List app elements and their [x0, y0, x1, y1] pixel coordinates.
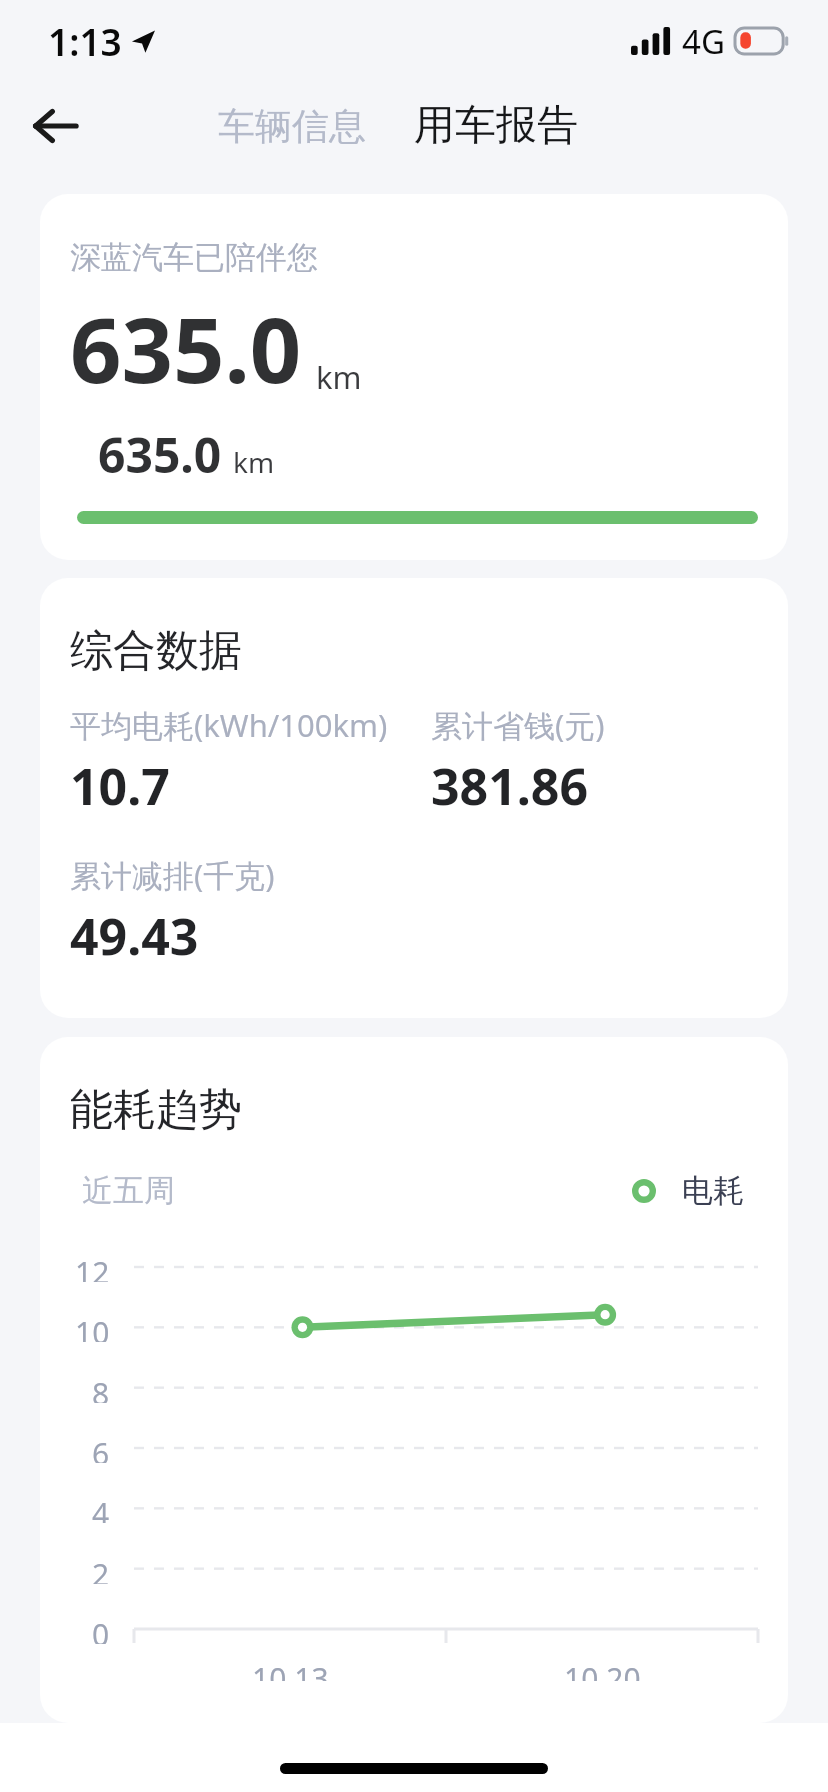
staticText: 能耗趋势 [70, 1083, 242, 1137]
staticText: 635.0 [98, 422, 222, 487]
staticText: 10.7 [70, 752, 170, 820]
staticText: 10 [75, 1312, 110, 1342]
button[interactable]: 综合数据 [40, 578, 788, 1018]
staticText: 49.43 [70, 902, 199, 970]
staticText: 10.13 [252, 1658, 329, 1681]
staticText: 635.0 [70, 287, 302, 410]
staticText: 累计省钱(元) [431, 704, 605, 746]
staticText: 8 [92, 1373, 110, 1403]
staticText: km [316, 356, 362, 398]
staticText: 近五周 [82, 1171, 175, 1210]
staticText: 6 [92, 1433, 110, 1463]
staticText: 累计减排(千克) [70, 854, 275, 896]
staticText: 0 [92, 1614, 110, 1644]
button[interactable]: Back [18, 89, 92, 163]
button[interactable]: 能耗趋势 [40, 1037, 788, 1723]
staticText: 平均电耗(kWh/100km) [70, 704, 388, 746]
button[interactable]: 电耗 [632, 1171, 744, 1210]
staticText: 车辆信息 [218, 103, 366, 150]
staticText: 深蓝汽车已陪伴您 [70, 238, 318, 277]
staticText: 1:13 [48, 16, 122, 66]
staticText: 4G [682, 19, 725, 64]
staticText: 2 [92, 1554, 110, 1584]
staticText: km [233, 443, 275, 481]
button[interactable]: 用车报告 [396, 88, 596, 164]
staticText: 电耗 [682, 1171, 744, 1210]
staticText: 综合数据 [70, 624, 242, 678]
staticText: 10.20 [564, 1658, 641, 1681]
staticText: 12 [75, 1252, 110, 1282]
staticText: 用车报告 [414, 100, 578, 152]
button[interactable]: 车辆信息 [200, 89, 384, 164]
staticText: 4 [92, 1493, 110, 1523]
staticText: 381.86 [431, 752, 589, 820]
button[interactable]: 深蓝汽车已陪伴您 [40, 194, 788, 560]
